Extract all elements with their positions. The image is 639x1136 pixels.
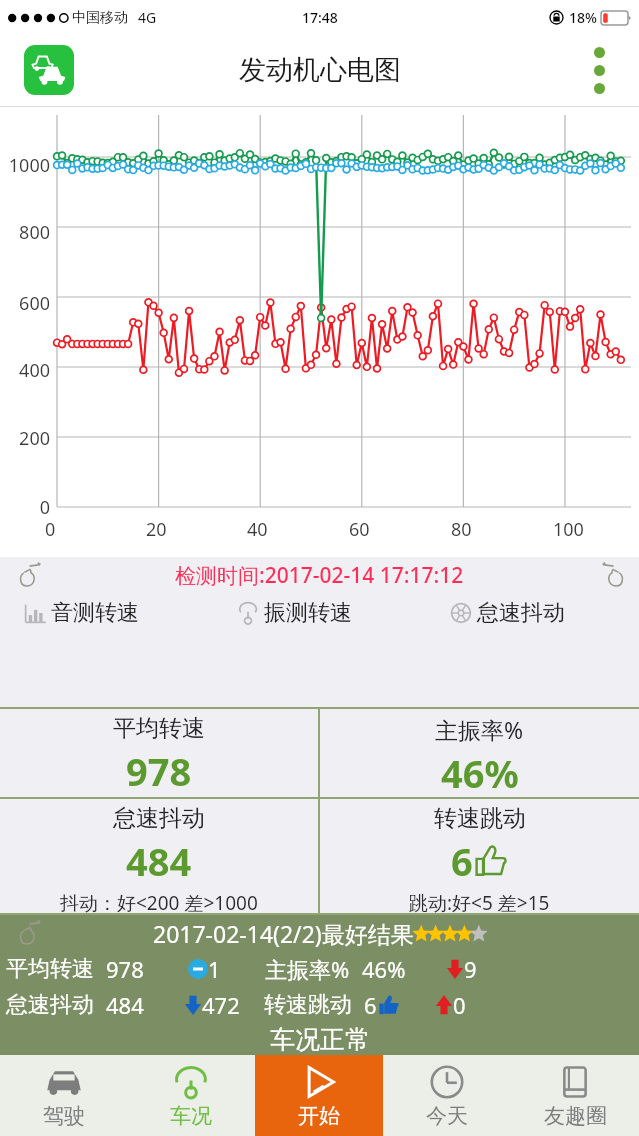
staticText: 1000 [0,153,50,178]
staticText: 友趣圈 [544,1103,607,1129]
staticText: 抖动：好<200 差>1000 [60,890,258,913]
staticText: 音测转速 [51,599,139,627]
other: Swipe [16,920,42,946]
button[interactable]: 转速跳动 [320,799,639,913]
staticText: 9 [464,954,477,984]
staticText: 20 [146,517,167,542]
staticText: 1 [208,954,221,984]
staticText: 主振率% [265,954,350,984]
staticText: 中国移动 [72,9,128,27]
button[interactable]: 平均转速 [0,709,318,797]
button[interactable]: More options [586,39,613,102]
staticText: 振测转速 [339,557,407,578]
staticText: 发动机心电图 [239,53,401,87]
staticText: 今天 [426,1103,468,1129]
staticText: 怠速抖动 [6,991,94,1019]
staticText: 800 [0,220,50,245]
button[interactable]: 友趣圈 [511,1055,639,1136]
staticText: 车况 [170,1103,212,1129]
staticText: 0 [45,517,56,542]
button[interactable]: 音测转速 [0,593,213,633]
staticText: 转速跳动 [264,991,352,1019]
staticText: 46% [441,747,519,797]
staticText: 484 [126,835,192,887]
staticText: 200 [0,426,50,451]
button[interactable]: 怠速抖动 [0,799,318,913]
staticText: 0 [453,990,466,1020]
staticText: 4G [138,8,157,27]
staticText: 平均转速 [113,714,205,743]
staticText: 80 [451,517,472,542]
staticText: 跳动:好<5 差>15 [409,890,550,913]
staticText: 18% [569,8,597,27]
button[interactable]: 开始 [255,1055,383,1136]
staticText: 17:48 [302,8,338,27]
staticText: 60 [349,517,370,542]
other: Swipe right [601,562,627,588]
staticText: 驾驶 [43,1103,85,1129]
staticText: 484 [106,990,144,1020]
other: Swipe left [16,562,42,588]
staticText: 开始 [298,1103,340,1129]
staticText: 600 [0,291,50,316]
staticText: 472 [202,990,240,1020]
button[interactable]: 主振率% [320,709,639,797]
staticText: 0 [0,495,50,520]
staticText: 平均转速 [6,955,94,983]
staticText: 检测时间:2017-02-14 17:17:12 [175,561,464,590]
button[interactable]: 今天 [383,1055,511,1136]
button[interactable]: App icon [24,45,74,95]
staticText: 978 [126,745,192,797]
button[interactable]: 车况 [127,1055,255,1136]
staticText: 400 [0,358,50,383]
staticText: 主振率% [435,714,524,745]
staticText: 6 [451,835,473,887]
staticText: 978 [106,954,144,984]
staticText: 100 [553,517,584,542]
staticText: 转速跳动 [434,804,526,833]
staticText: 怠速抖动 [214,557,282,578]
staticText: 怠速抖动 [477,599,565,627]
staticText: 40 [247,517,268,542]
staticText: 46% [362,954,406,984]
button[interactable]: 怠速抖动 [426,593,639,633]
staticText: 振测转速 [264,599,352,627]
staticText: 怠速抖动 [113,804,205,833]
staticText: 车况正常 [270,1024,370,1055]
button[interactable]: 驾驶 [0,1055,127,1136]
button[interactable]: 振测转速 [213,593,426,633]
staticText: 2017-02-14(2/2)最好结果 [153,918,414,949]
staticText: 6 [364,990,377,1020]
